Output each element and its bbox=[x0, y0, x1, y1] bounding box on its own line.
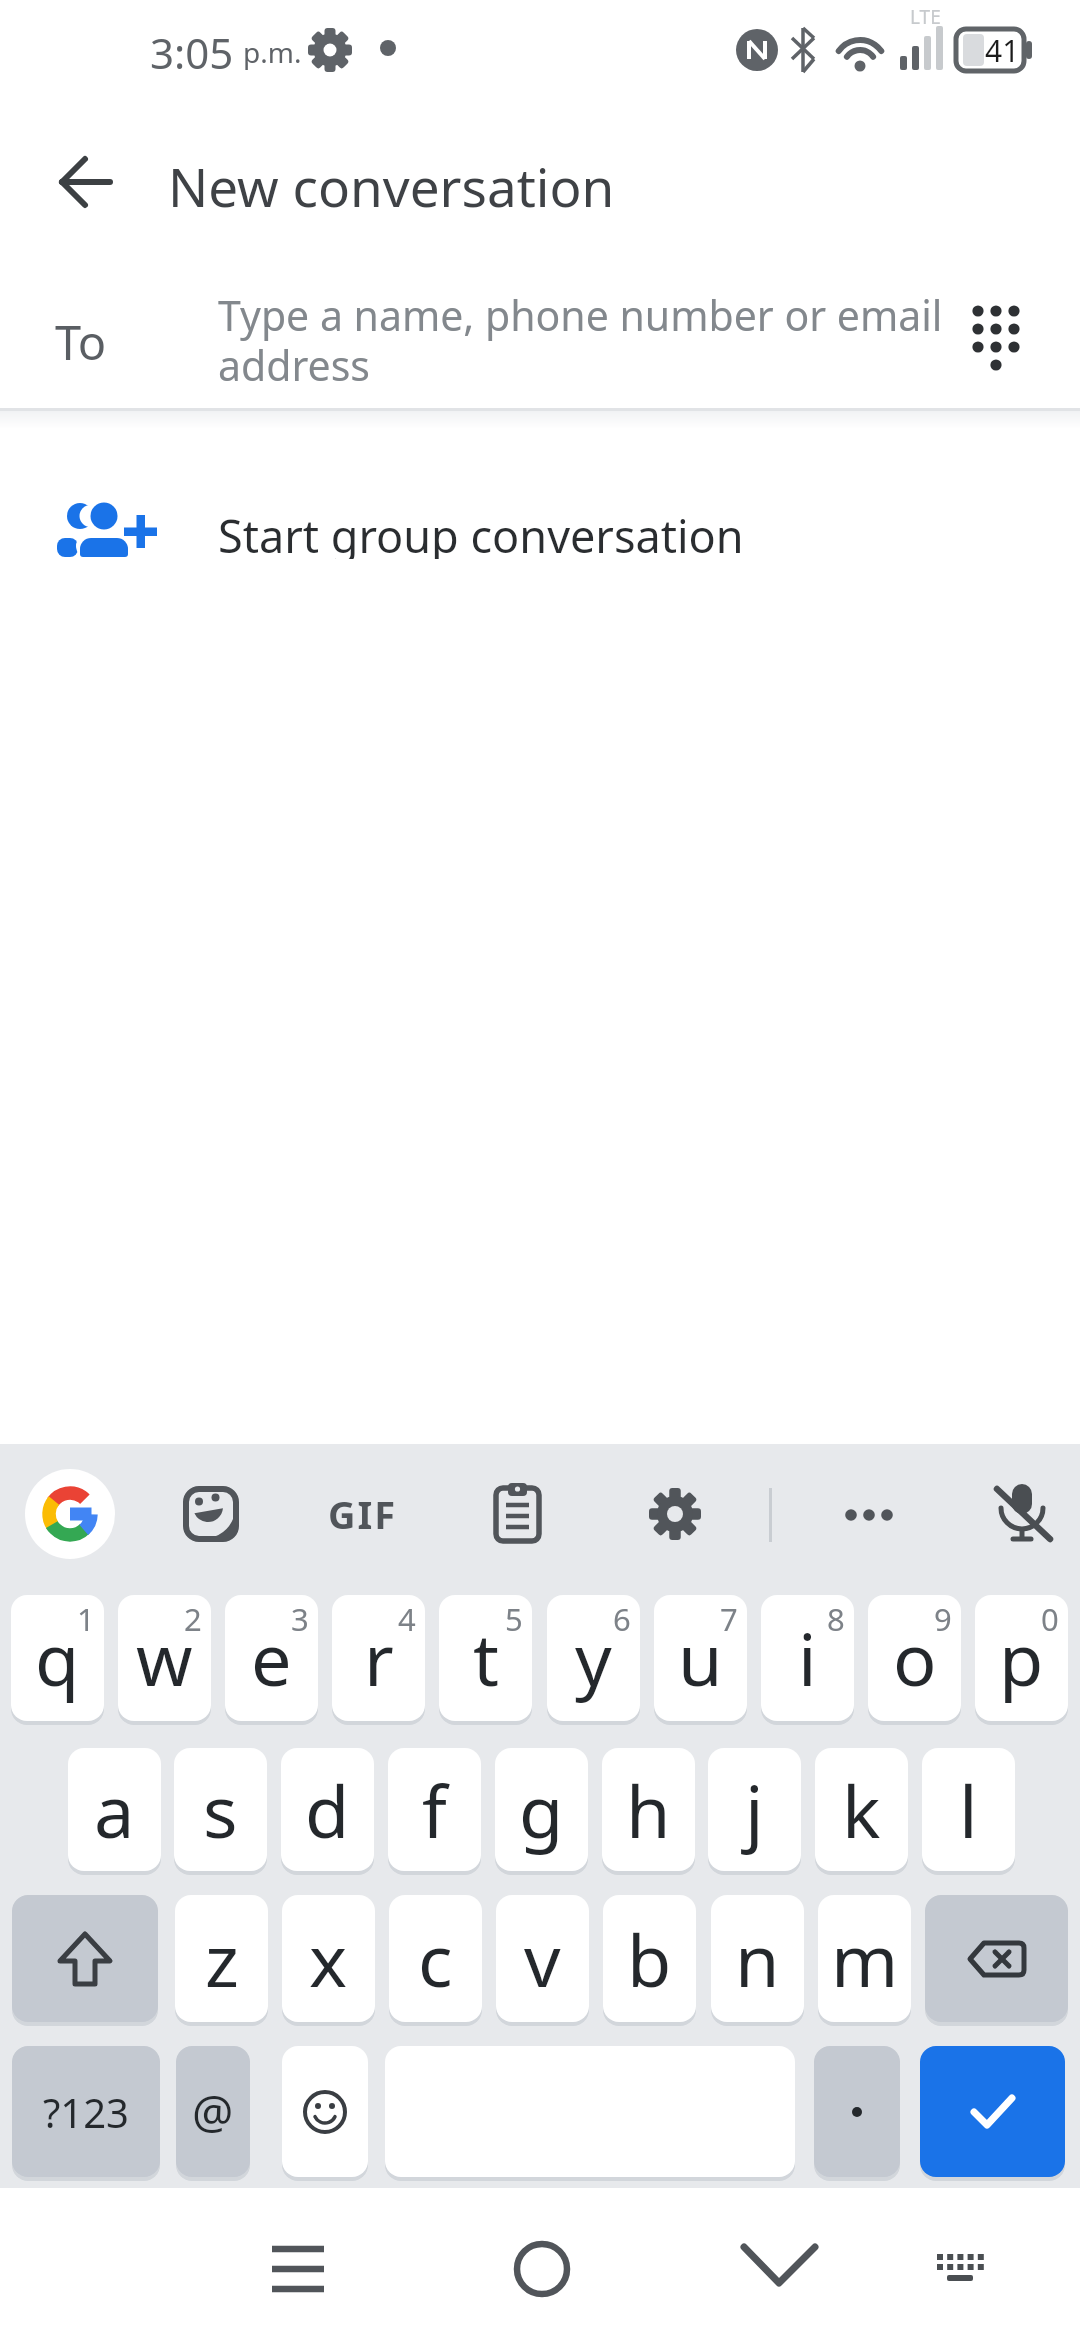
button[interactable]: ?123 bbox=[12, 2046, 160, 2177]
button[interactable] bbox=[504, 2232, 580, 2308]
button[interactable] bbox=[170, 1473, 250, 1553]
button[interactable] bbox=[814, 2046, 900, 2177]
button[interactable] bbox=[925, 1895, 1068, 2022]
staticText: f bbox=[422, 1761, 447, 1859]
staticText: 6 bbox=[613, 1598, 631, 1640]
staticText: q bbox=[35, 1609, 80, 1707]
button[interactable]: j bbox=[708, 1748, 801, 1871]
button[interactable]: d bbox=[281, 1748, 374, 1871]
staticText: b bbox=[627, 1910, 672, 2008]
staticText: n bbox=[735, 1910, 780, 2008]
button[interactable]: q bbox=[11, 1595, 104, 1721]
staticText: 0 bbox=[1041, 1598, 1059, 1640]
button[interactable]: u bbox=[654, 1595, 747, 1721]
button[interactable] bbox=[262, 2232, 338, 2308]
staticText: 5 bbox=[505, 1598, 523, 1640]
staticText: a bbox=[94, 1761, 135, 1859]
staticText: v bbox=[524, 1910, 561, 2008]
staticText: 3 bbox=[291, 1598, 309, 1640]
staticText: t bbox=[473, 1609, 499, 1707]
button[interactable]: p bbox=[975, 1595, 1068, 1721]
staticText: p bbox=[999, 1609, 1044, 1707]
staticText: GIF bbox=[328, 1488, 398, 1540]
staticText: x bbox=[309, 1910, 348, 2008]
staticText: u bbox=[678, 1609, 723, 1707]
button[interactable]: k bbox=[815, 1748, 908, 1871]
button[interactable] bbox=[0, 255, 940, 408]
button[interactable]: t bbox=[439, 1595, 532, 1721]
button[interactable] bbox=[920, 2046, 1065, 2177]
button[interactable]: i bbox=[761, 1595, 854, 1721]
button[interactable] bbox=[25, 1469, 115, 1559]
staticText: l bbox=[959, 1761, 978, 1859]
staticText: y bbox=[575, 1609, 612, 1707]
staticText: @ bbox=[192, 2080, 234, 2143]
button[interactable]: r bbox=[332, 1595, 425, 1721]
staticText: o bbox=[893, 1609, 937, 1707]
button[interactable]: m bbox=[818, 1895, 911, 2022]
staticText: j bbox=[745, 1761, 764, 1859]
button[interactable] bbox=[645, 1484, 705, 1544]
button[interactable]: l bbox=[922, 1748, 1015, 1871]
staticText: g bbox=[519, 1761, 564, 1859]
staticText: 4 bbox=[398, 1598, 416, 1640]
button[interactable] bbox=[930, 2238, 992, 2300]
button[interactable] bbox=[12, 1895, 158, 2022]
staticText: 1 bbox=[77, 1598, 95, 1640]
button[interactable] bbox=[486, 1475, 550, 1551]
staticText: d bbox=[305, 1761, 350, 1859]
button[interactable] bbox=[952, 294, 1042, 384]
button[interactable]: f bbox=[388, 1748, 481, 1871]
staticText: Type a name, phone number or email addre… bbox=[218, 287, 943, 393]
button[interactable]: o bbox=[868, 1595, 961, 1721]
staticText: i bbox=[798, 1609, 817, 1707]
button[interactable]: g bbox=[495, 1748, 588, 1871]
button[interactable]: s bbox=[174, 1748, 267, 1871]
button[interactable]: n bbox=[711, 1895, 804, 2022]
button[interactable]: x bbox=[282, 1895, 375, 2022]
button[interactable] bbox=[48, 146, 120, 218]
button[interactable] bbox=[992, 1480, 1058, 1546]
staticText: 7 bbox=[720, 1598, 738, 1640]
staticText: 8 bbox=[827, 1598, 845, 1640]
staticText: ?123 bbox=[43, 2085, 129, 2139]
staticText: 9 bbox=[934, 1598, 952, 1640]
staticText: m bbox=[831, 1910, 899, 2008]
button[interactable]: c bbox=[389, 1895, 482, 2022]
button[interactable]: z bbox=[175, 1895, 268, 2022]
staticText: 41 bbox=[985, 30, 1020, 71]
button[interactable] bbox=[836, 1484, 900, 1544]
staticText: k bbox=[842, 1761, 881, 1859]
staticText: h bbox=[626, 1761, 671, 1859]
button[interactable] bbox=[744, 2228, 820, 2304]
button[interactable] bbox=[282, 2046, 368, 2177]
staticText: p.m. bbox=[243, 33, 302, 71]
staticText: 2 bbox=[184, 1598, 202, 1640]
button[interactable]: GIF bbox=[317, 1488, 409, 1540]
button[interactable]: e bbox=[225, 1595, 318, 1721]
staticText: z bbox=[205, 1910, 239, 2008]
staticText: r bbox=[364, 1609, 394, 1707]
button[interactable]: a bbox=[68, 1748, 161, 1871]
staticText: e bbox=[251, 1609, 292, 1707]
staticText: To bbox=[55, 310, 107, 362]
button[interactable]: y bbox=[547, 1595, 640, 1721]
staticText: s bbox=[203, 1761, 238, 1859]
staticText: w bbox=[136, 1609, 193, 1707]
button[interactable]: w bbox=[118, 1595, 211, 1721]
button[interactable]: v bbox=[496, 1895, 589, 2022]
staticText: c bbox=[418, 1910, 453, 2008]
staticText: LTE bbox=[910, 4, 941, 26]
button[interactable]: h bbox=[602, 1748, 695, 1871]
staticText: 3:05 bbox=[150, 24, 234, 76]
staticText: New conversation bbox=[168, 150, 615, 214]
button[interactable] bbox=[0, 462, 1080, 602]
button[interactable]: b bbox=[603, 1895, 696, 2022]
button[interactable]: @ bbox=[176, 2046, 250, 2177]
staticText: Start group conversation bbox=[218, 505, 744, 559]
